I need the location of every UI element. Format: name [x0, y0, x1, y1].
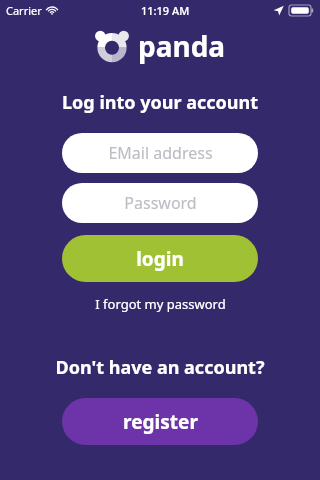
staticText: I forgot my password	[95, 295, 226, 313]
staticText: EMail address	[108, 142, 213, 164]
button[interactable]: register	[62, 398, 258, 445]
button[interactable]: I forgot my password	[0, 295, 320, 313]
staticText: 11:19 AM	[141, 3, 190, 18]
staticText: Carrier	[6, 3, 42, 18]
other: Panda logo	[95, 29, 129, 63]
staticText: Password	[124, 192, 197, 214]
staticText: register	[123, 409, 198, 435]
button[interactable]: login	[62, 235, 258, 282]
staticText: Log into your account	[0, 90, 320, 115]
staticText: Don't have an account?	[0, 355, 320, 380]
staticText: panda	[138, 27, 226, 65]
staticText: login	[136, 246, 184, 272]
button[interactable]: Password	[62, 183, 258, 223]
button[interactable]: EMail address	[62, 133, 258, 173]
